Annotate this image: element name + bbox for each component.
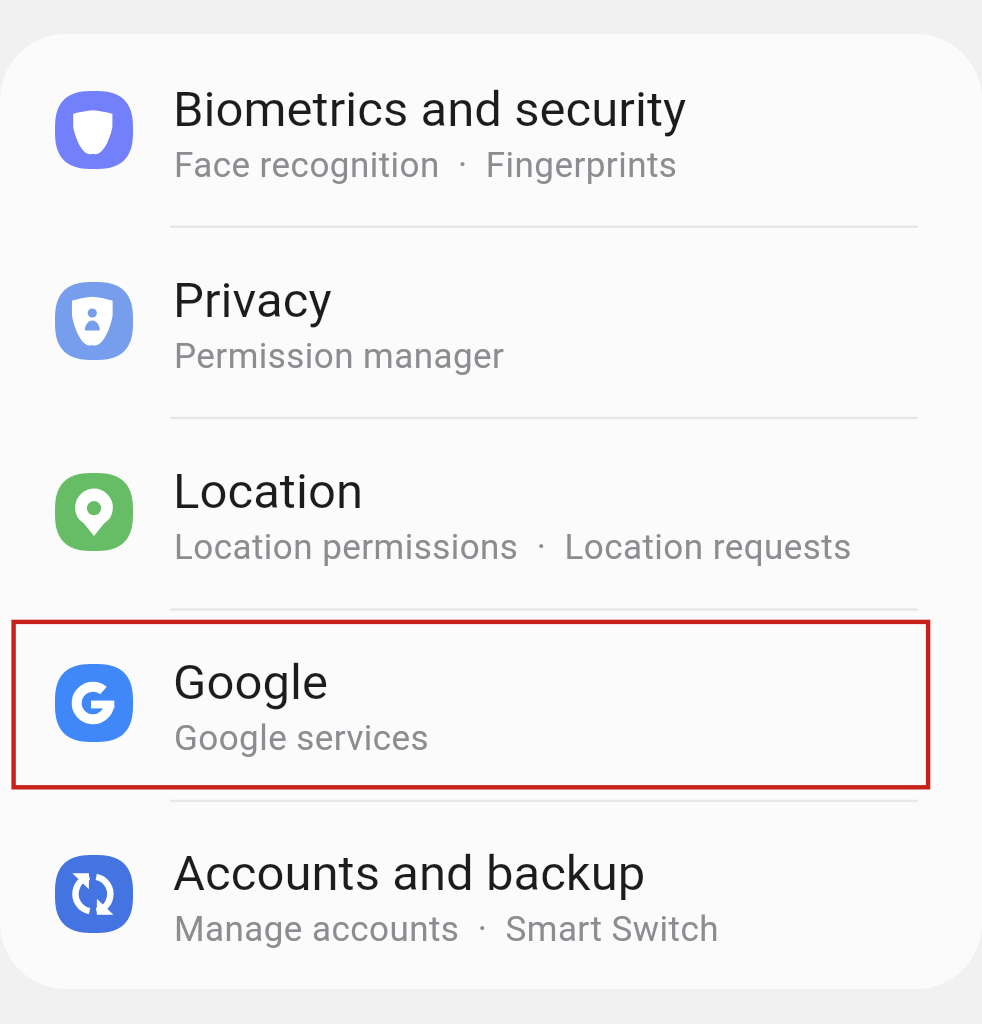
staticText: Accounts and backup xyxy=(173,845,646,902)
staticText: Google xyxy=(173,654,328,711)
staticText: Biometrics and security xyxy=(173,81,687,138)
staticText: Manage accounts · Smart Switch xyxy=(174,909,719,950)
other: Accounts and backup xyxy=(55,855,133,933)
staticText: Google services xyxy=(174,718,430,759)
other: Biometrics and security xyxy=(55,91,133,169)
staticText: Location permissions · Location requests xyxy=(174,527,852,568)
staticText: Location xyxy=(173,463,363,520)
button[interactable]: Privacy xyxy=(0,225,982,416)
other: Google xyxy=(55,664,133,742)
staticText: Face recognition · Fingerprints xyxy=(174,145,678,186)
staticText: Permission manager xyxy=(174,336,505,377)
button[interactable]: Accounts and backup xyxy=(0,798,982,989)
other: Location xyxy=(55,473,133,551)
button[interactable]: Location xyxy=(0,416,982,607)
button[interactable]: Google xyxy=(0,607,982,798)
button[interactable]: Biometrics and security xyxy=(0,34,982,225)
other: Privacy xyxy=(55,282,133,360)
staticText: Privacy xyxy=(173,272,332,329)
